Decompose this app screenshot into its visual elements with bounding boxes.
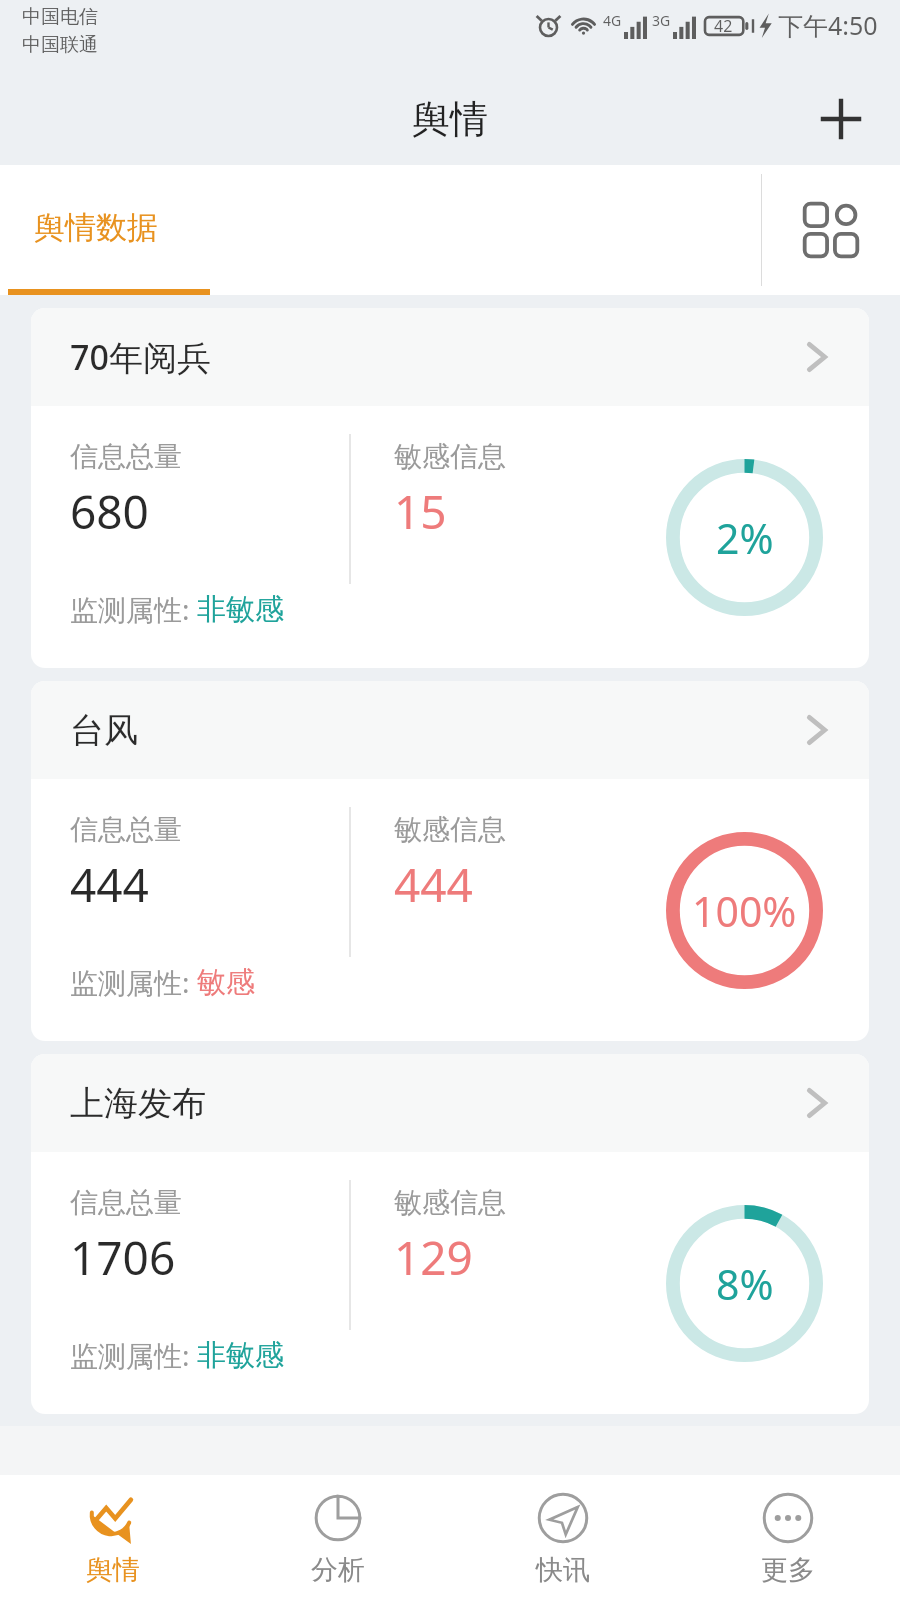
staticText: 下午4:50 [778, 8, 878, 42]
staticText: 2% [716, 510, 774, 566]
staticText: 129 [394, 1226, 473, 1289]
staticText: 舆情数据 [34, 208, 158, 247]
button[interactable]: 台风 [31, 681, 869, 1041]
staticText: 非敏感 [197, 1337, 284, 1374]
staticText: 监测属性: [70, 1336, 197, 1374]
button[interactable]: 上海发布 [31, 1054, 869, 1414]
staticText: 中国电信 [22, 5, 98, 29]
staticText: 敏感信息 [394, 1185, 506, 1220]
staticText: 信息总量 [70, 812, 182, 847]
button[interactable]: 70年阅兵 [31, 308, 869, 668]
staticText: 监测属性: [70, 590, 197, 628]
staticText: 台风 [70, 709, 138, 752]
staticText: 上海发布 [70, 1082, 206, 1125]
staticText: 3G [652, 11, 671, 30]
staticText: 非敏感 [197, 591, 284, 628]
staticText: 4G [603, 11, 622, 30]
button[interactable]: 快讯 [450, 1475, 675, 1600]
staticText: 分析 [311, 1553, 365, 1587]
staticText: 8% [716, 1256, 774, 1312]
staticText: 100% [692, 883, 797, 939]
staticText: 1706 [70, 1226, 176, 1289]
staticText: 敏感 [197, 964, 255, 1001]
staticText: 444 [70, 853, 149, 916]
button[interactable]: 舆情数据 [0, 165, 761, 295]
staticText: 敏感信息 [394, 812, 506, 847]
staticText: 中国联通 [22, 33, 98, 57]
button[interactable]: 更多 [675, 1475, 900, 1600]
staticText: 更多 [761, 1553, 815, 1587]
staticText: 敏感信息 [394, 439, 506, 474]
staticText: 舆情 [86, 1553, 140, 1587]
staticText: 快讯 [536, 1553, 590, 1587]
button[interactable]: 分析 [225, 1475, 450, 1600]
staticText: 444 [394, 853, 473, 916]
staticText: 信息总量 [70, 1185, 182, 1220]
button[interactable]: 舆情 [0, 1475, 225, 1600]
staticText: 15 [394, 480, 447, 543]
button[interactable]: Add [810, 88, 872, 150]
staticText: 信息总量 [70, 439, 182, 474]
staticText: 680 [70, 480, 149, 543]
staticText: 70年阅兵 [70, 334, 211, 380]
staticText: 42 [714, 15, 733, 37]
staticText: 舆情 [412, 95, 488, 143]
button[interactable]: Grid view [762, 165, 900, 295]
staticText: 监测属性: [70, 963, 197, 1001]
